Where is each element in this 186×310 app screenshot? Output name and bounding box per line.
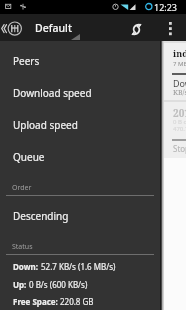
staticText: Download speed xyxy=(13,86,92,100)
staticText: Down: xyxy=(13,261,41,272)
button[interactable]: Upload speed xyxy=(0,109,160,141)
staticText: KB/s xyxy=(173,88,186,98)
staticText: 201 xyxy=(173,106,186,120)
button[interactable]: More options xyxy=(159,15,182,42)
button[interactable]: Peers xyxy=(0,45,160,77)
staticText: Queue xyxy=(13,150,45,164)
staticText: 7 MB xyxy=(173,60,186,68)
staticText: 0 B/s (600 KB/s) xyxy=(29,279,88,290)
staticText: Status xyxy=(12,242,33,252)
staticText: Default xyxy=(35,21,72,35)
staticText: 220.8 GB xyxy=(60,296,94,307)
button[interactable]: Descending xyxy=(0,200,160,232)
staticText: Peers xyxy=(13,54,40,68)
button[interactable]: Refresh xyxy=(124,16,149,43)
button[interactable]: Queue xyxy=(0,141,160,173)
button[interactable]: 201 xyxy=(164,102,186,158)
button[interactable]: Download speed xyxy=(0,77,160,109)
button[interactable]: Default xyxy=(0,14,90,41)
staticText: Descending xyxy=(13,209,69,223)
staticText: 470.7 xyxy=(173,125,186,133)
staticText: 52.7 KB/s (1.6 MB/s) xyxy=(41,261,116,272)
button[interactable]: indi xyxy=(164,43,186,100)
staticText: Up: xyxy=(13,279,29,290)
staticText: Order xyxy=(12,183,32,193)
staticText: 0 B o xyxy=(173,118,186,126)
staticText: 12:23 xyxy=(154,1,178,13)
staticText: Stop xyxy=(173,143,186,154)
staticText: Upload speed xyxy=(13,118,78,132)
staticText: Free Space: xyxy=(13,296,60,307)
staticText: Dow xyxy=(173,77,186,89)
staticText: indi xyxy=(173,47,186,59)
